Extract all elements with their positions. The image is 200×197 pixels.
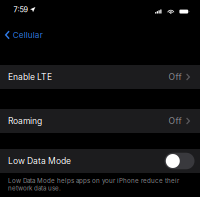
button[interactable]: Roaming [0, 109, 200, 133]
button[interactable]: Cellular [0, 27, 49, 43]
button[interactable]: Low Data Mode [0, 149, 200, 173]
staticText: Enable LTE [8, 72, 52, 82]
staticText: Low Data Mode helps apps on your iPhone … [8, 177, 179, 192]
staticText: Off [168, 72, 181, 82]
staticText: Off [168, 116, 181, 126]
staticText: Low Data Mode [8, 156, 71, 166]
button[interactable]: Enable LTE [0, 65, 200, 89]
staticText: 7:59 [13, 5, 28, 14]
staticText: Roaming [8, 116, 42, 126]
staticText: Cellular [13, 30, 43, 40]
